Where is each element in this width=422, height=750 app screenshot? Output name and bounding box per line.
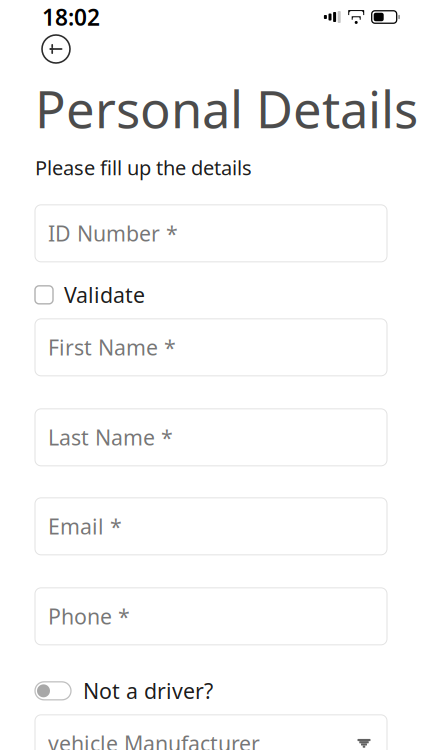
staticText: Personal Details	[35, 75, 418, 142]
staticText: 18:02	[42, 2, 100, 32]
staticText: Not a driver?	[83, 677, 213, 705]
staticText: Email *	[48, 512, 122, 540]
button[interactable]: Not a driver?	[35, 679, 387, 703]
staticText: Phone *	[48, 602, 130, 630]
button[interactable]: vehicle Manufacturer	[35, 715, 387, 750]
button[interactable]: Back	[40, 33, 72, 65]
staticText: First Name *	[48, 333, 176, 361]
staticText: Validate	[64, 281, 145, 309]
button[interactable]: Validate	[35, 283, 387, 307]
staticText: ID Number *	[48, 219, 178, 247]
staticText: vehicle Manufacturer	[48, 729, 260, 750]
staticText: Last Name *	[48, 423, 173, 451]
staticText: Please fill up the details	[35, 154, 252, 181]
